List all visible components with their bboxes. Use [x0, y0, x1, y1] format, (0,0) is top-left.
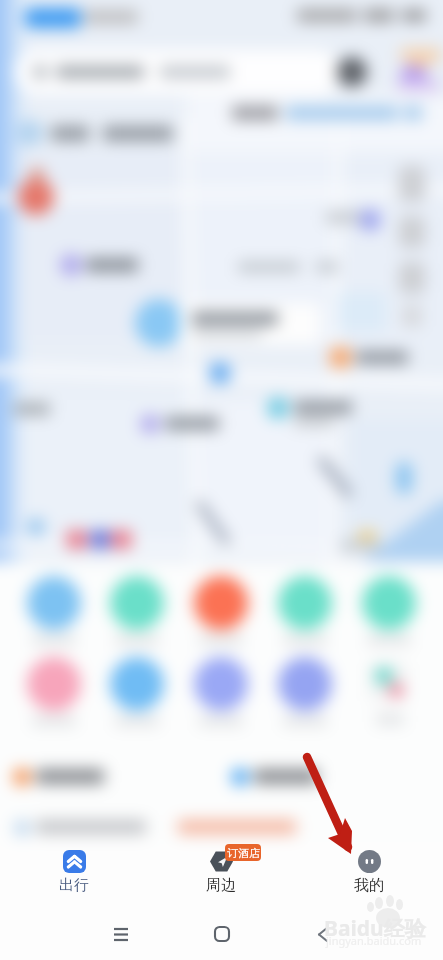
button[interactable]: 我的 — [295, 843, 443, 899]
button[interactable]: 出行 — [0, 843, 147, 899]
button[interactable]: Home — [181, 908, 263, 960]
staticText: Baidu经验 — [324, 914, 426, 943]
staticText: jingyan.baidu.com — [326, 933, 422, 948]
staticText: 周边 — [206, 876, 236, 895]
staticText: 我的 — [354, 876, 384, 895]
button[interactable]: Back — [282, 908, 364, 960]
button[interactable]: 周边 — [147, 843, 295, 899]
staticText: 订酒店 — [227, 846, 260, 860]
button[interactable]: Recents — [80, 908, 162, 960]
staticText: 出行 — [59, 876, 89, 895]
